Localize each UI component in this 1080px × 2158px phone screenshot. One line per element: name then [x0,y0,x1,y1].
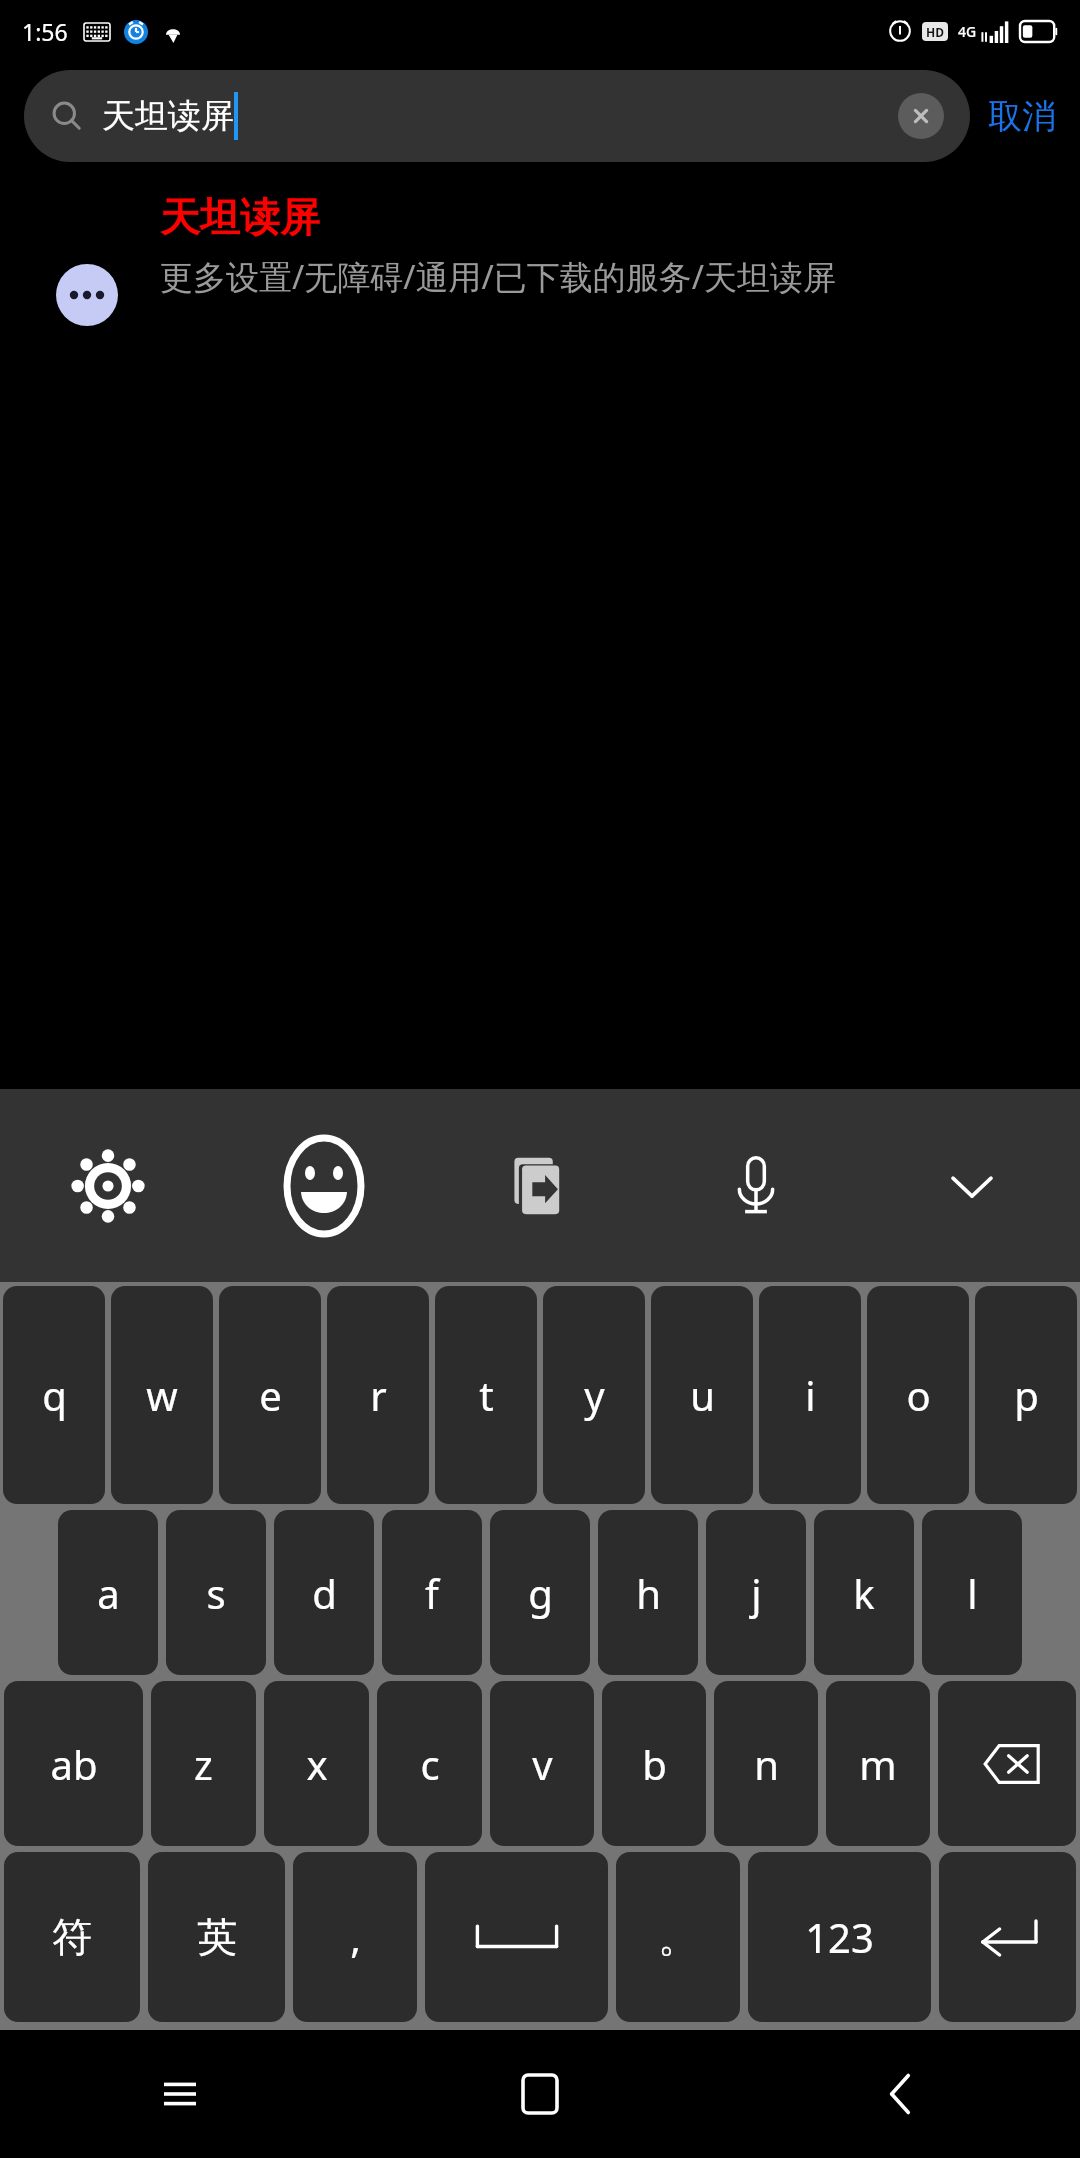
button[interactable] [425,1852,608,2022]
button[interactable]: h [598,1510,698,1675]
staticText: z [194,1737,213,1791]
staticText: f [425,1566,439,1620]
button[interactable]: y [543,1286,645,1504]
staticText: i [805,1368,816,1422]
button[interactable]: d [274,1510,374,1675]
staticText: s [206,1566,226,1620]
staticText: l [967,1566,978,1620]
button[interactable]: k [814,1510,914,1675]
button[interactable]: g [490,1510,590,1675]
staticText: x [306,1737,328,1791]
button[interactable]: Home [360,2030,720,2158]
staticText: , [350,1910,361,1964]
staticText: g [528,1566,553,1620]
button[interactable]: 123 [748,1852,931,2022]
button[interactable]: Emoji [216,1089,432,1282]
button[interactable]: z [151,1681,256,1846]
button[interactable]: 取消 [970,85,1062,148]
staticText: c [420,1737,440,1791]
staticText: o [906,1368,931,1422]
staticText: 1:56 [22,16,68,47]
button[interactable]: t [435,1286,537,1504]
staticText: b [642,1737,667,1791]
staticText: 天坦读屏 [160,192,320,242]
button[interactable]: o [867,1286,969,1504]
button[interactable]: Voice input [648,1089,864,1282]
staticText: q [42,1368,67,1422]
button[interactable]: u [651,1286,753,1504]
button[interactable]: Back [720,2030,1080,2158]
button[interactable]: a [58,1510,158,1675]
button[interactable]: Hide keyboard [864,1089,1080,1282]
button[interactable]: x [264,1681,369,1846]
button[interactable]: Settings [0,1089,216,1282]
staticText: j [751,1566,762,1620]
staticText: p [1014,1368,1039,1422]
button[interactable]: m [826,1681,930,1846]
button[interactable] [938,1681,1076,1846]
button[interactable]: n [714,1681,818,1846]
button[interactable]: p [975,1286,1077,1504]
staticText: d [312,1566,337,1620]
button[interactable]: Recent apps [0,2030,360,2158]
staticText: w [146,1368,178,1422]
button[interactable]: Clipboard [432,1089,648,1282]
staticText: 更多设置/无障碍/通用/已下载的服务/天坦读屏 [160,254,837,299]
button[interactable]: 天坦读屏 [0,162,1080,326]
staticText: m [859,1737,897,1791]
button[interactable]: q [3,1286,105,1504]
button[interactable]: i [759,1286,861,1504]
staticText: 4G [958,22,977,41]
button[interactable] [939,1852,1076,2022]
staticText: h [636,1566,661,1620]
button[interactable]: 符 [4,1852,140,2022]
button[interactable]: v [490,1681,594,1846]
button[interactable]: j [706,1510,806,1675]
staticText: r [370,1368,387,1422]
staticText: ab [50,1737,98,1791]
button[interactable]: f [382,1510,482,1675]
button[interactable]: 。 [616,1852,740,2022]
staticText: 英 [197,1912,237,1962]
staticText: e [259,1368,282,1422]
staticText: 123 [805,1910,874,1964]
staticText: t [479,1368,494,1422]
staticText: n [754,1737,779,1791]
button[interactable]: c [377,1681,482,1846]
button[interactable]: s [166,1510,266,1675]
button[interactable]: r [327,1286,429,1504]
button[interactable]: l [922,1510,1022,1675]
button[interactable]: ab [4,1681,143,1846]
staticText: v [532,1737,553,1791]
button[interactable]: 英 [148,1852,285,2022]
staticText: y [584,1368,605,1422]
staticText: k [853,1566,875,1620]
button[interactable]: , [293,1852,417,2022]
button[interactable]: Clear [898,93,944,139]
button[interactable]: b [602,1681,706,1846]
button[interactable]: w [111,1286,213,1504]
button[interactable]: e [219,1286,321,1504]
staticText: 取消 [988,95,1056,138]
staticText: 天坦读屏 [102,95,234,137]
staticText: HD [926,24,944,40]
staticText: a [97,1566,120,1620]
button[interactable]: 天坦读屏 [24,70,970,162]
staticText: 。 [658,1912,698,1962]
staticText: 符 [52,1912,92,1962]
staticText: u [690,1368,715,1422]
